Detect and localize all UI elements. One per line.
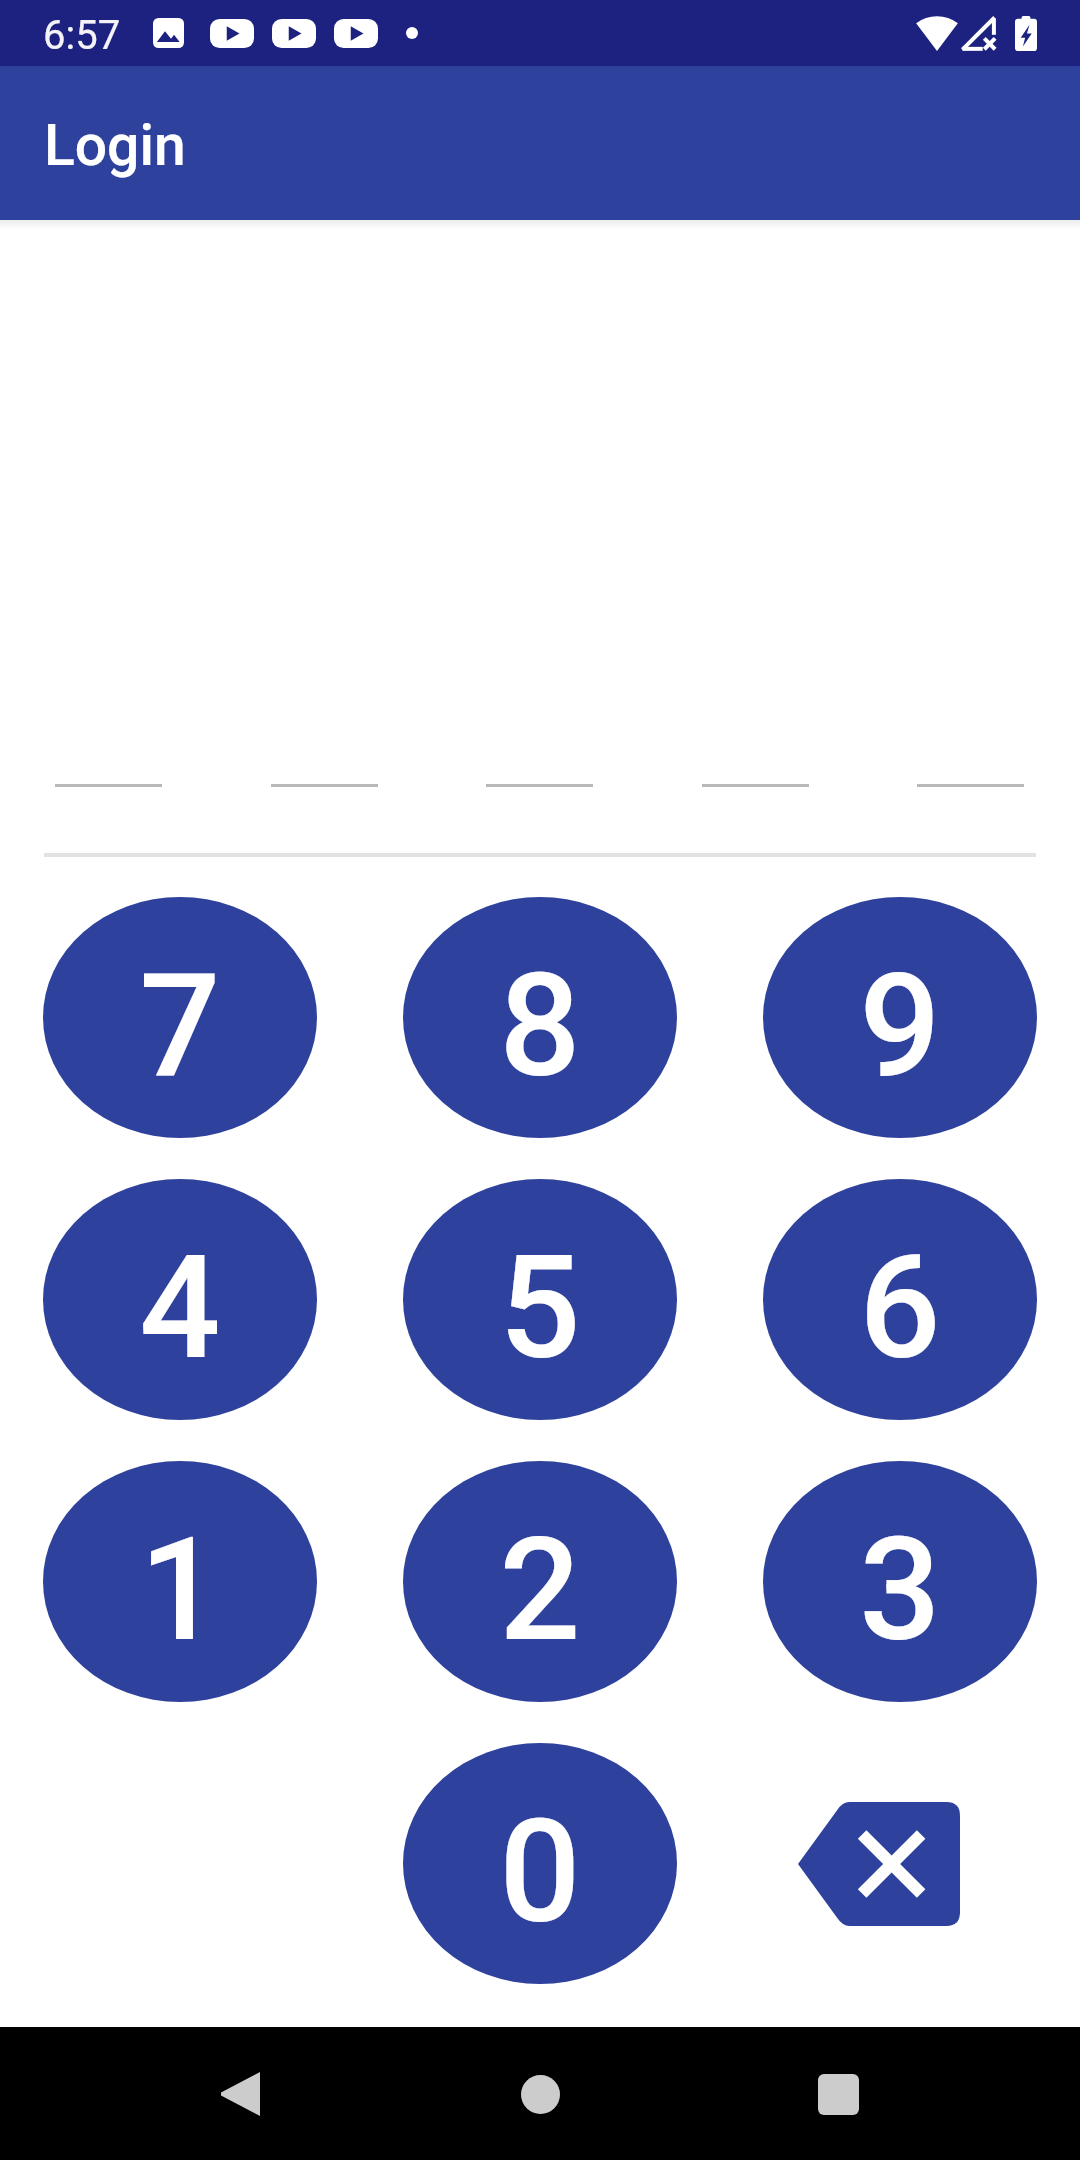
button[interactable]: 1	[43, 1461, 317, 1702]
button[interactable]: 8	[403, 897, 677, 1138]
button[interactable]: 0	[403, 1743, 677, 1984]
button[interactable]: Backspace	[798, 1802, 960, 1926]
staticText: 8	[499, 942, 581, 1110]
staticText: 6:57	[43, 12, 121, 59]
button[interactable]: 3	[763, 1461, 1037, 1702]
staticText: 3	[859, 1506, 941, 1674]
button[interactable]: 4	[43, 1179, 317, 1420]
staticText: 7	[139, 942, 221, 1110]
button[interactable]: Recents	[802, 2058, 874, 2130]
button[interactable]: Home	[504, 2058, 576, 2130]
staticText: 4	[139, 1224, 221, 1392]
staticText: 1	[139, 1506, 221, 1674]
button[interactable]: Back	[204, 2058, 276, 2130]
staticText: 9	[859, 942, 941, 1110]
button[interactable]: 5	[403, 1179, 677, 1420]
staticText: 6	[859, 1224, 941, 1392]
staticText: 2	[499, 1506, 581, 1674]
staticText: 0	[499, 1788, 581, 1956]
staticText: 5	[499, 1224, 581, 1392]
button[interactable]: 9	[763, 897, 1037, 1138]
button[interactable]: 6	[763, 1179, 1037, 1420]
button[interactable]: 7	[43, 897, 317, 1138]
staticText: Login	[44, 112, 186, 179]
button[interactable]: 2	[403, 1461, 677, 1702]
